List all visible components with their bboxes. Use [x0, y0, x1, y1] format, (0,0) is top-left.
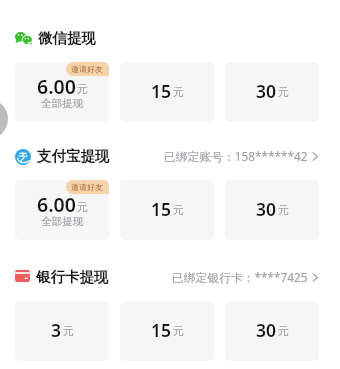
staticText: 6.00 [37, 73, 76, 100]
staticText: 元 [173, 203, 184, 217]
staticText: 15 [151, 79, 172, 103]
staticText: 元 [77, 82, 88, 96]
staticText: 邀请好友 [71, 64, 103, 74]
staticText: 30 [256, 79, 277, 103]
staticText: 微信提现 [38, 29, 96, 47]
staticText: 已绑定银行卡：****7425 [172, 269, 308, 285]
staticText: 支付宝提现 [37, 147, 110, 165]
button[interactable]: 邀请好友 [15, 180, 109, 240]
button[interactable]: 15 [120, 301, 214, 361]
button[interactable]: 3 [15, 301, 109, 361]
button[interactable]: 30 [225, 301, 319, 361]
staticText: 30 [256, 318, 277, 342]
button[interactable]: 已绑定银行卡：****7425 [109, 270, 340, 286]
staticText: 6.00 [37, 191, 76, 218]
other: WeChat [15, 32, 32, 44]
staticText: 全部提现 [41, 97, 83, 110]
button[interactable]: 30 [225, 62, 319, 122]
button[interactable]: 15 [120, 62, 214, 122]
staticText: 已绑定账号：158******42 [164, 148, 308, 164]
staticText: 全部提现 [41, 215, 83, 228]
staticText: 邀请好友 [71, 182, 103, 192]
staticText: 元 [173, 85, 184, 99]
staticText: 元 [278, 324, 289, 338]
button[interactable]: 15 [120, 180, 214, 240]
staticText: 15 [151, 318, 172, 342]
staticText: 元 [278, 203, 289, 217]
button[interactable]: 已绑定账号：158******42 [110, 149, 340, 165]
staticText: 银行卡提现 [36, 268, 109, 286]
staticText: 15 [151, 197, 172, 221]
other: Bank card [15, 270, 30, 282]
staticText: 30 [256, 197, 277, 221]
staticText: 元 [63, 324, 74, 338]
staticText: 3 [51, 318, 62, 342]
button[interactable]: 30 [225, 180, 319, 240]
staticText: 元 [278, 85, 289, 99]
button[interactable]: 邀请好友 [15, 62, 109, 122]
other: Alipay [15, 149, 31, 165]
staticText: 元 [173, 324, 184, 338]
staticText: 元 [77, 200, 88, 214]
